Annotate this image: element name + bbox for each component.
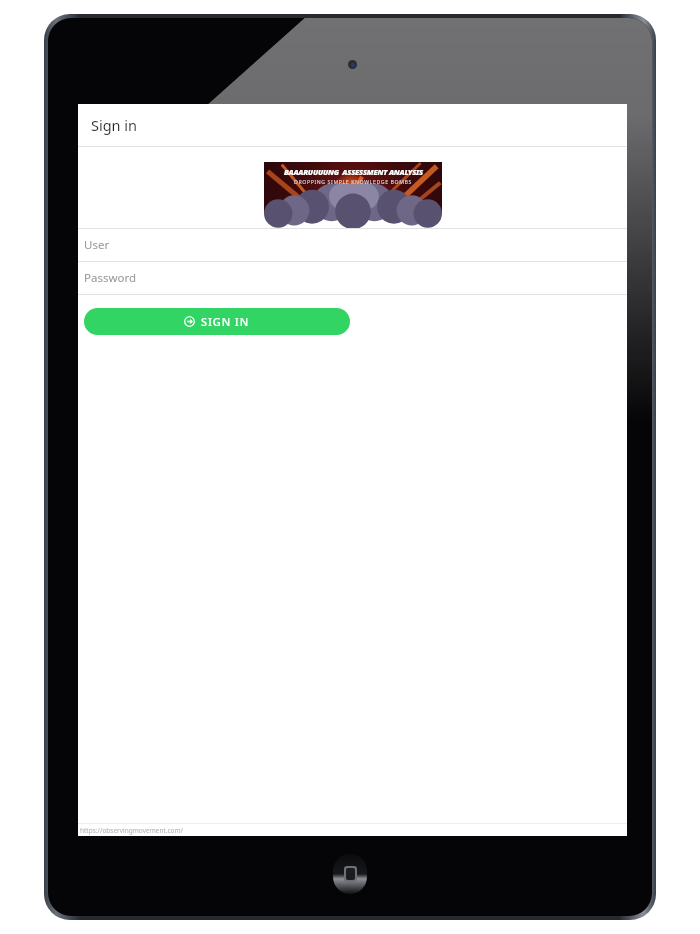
staticText: Password (84, 270, 137, 286)
staticText: https://observingmovement.com/ (80, 826, 184, 835)
staticText: Sign in (91, 115, 138, 135)
staticText: DROPPING SIMPLE KNOWLEDGE BOMBS (294, 178, 412, 185)
staticText: BAAARUUUUNG ASSESSMENT ANALYSIS (284, 167, 423, 177)
button[interactable]: Password (78, 262, 627, 294)
staticText: SIGN IN (201, 314, 250, 329)
button[interactable]: SIGN IN (84, 308, 350, 335)
staticText: User (84, 237, 110, 253)
button[interactable]: Home (333, 854, 367, 894)
button[interactable]: User (78, 229, 627, 261)
